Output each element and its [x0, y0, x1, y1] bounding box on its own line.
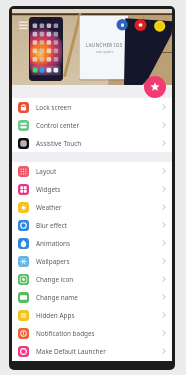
button[interactable]: Make Default Launcher: [12, 342, 172, 360]
staticText: Layout: [36, 167, 57, 176]
staticText: Make Default Launcher: [36, 347, 106, 356]
button[interactable]: Animations: [12, 234, 172, 252]
button[interactable]: Blur effect: [12, 216, 172, 234]
button[interactable]: Layout: [12, 162, 172, 180]
button[interactable]: Hidden Apps: [12, 306, 172, 324]
staticText: Blur effect: [36, 221, 68, 230]
button[interactable]: Change name: [12, 288, 172, 306]
button[interactable]: Widgets: [12, 180, 172, 198]
button[interactable]: Weather: [12, 198, 172, 216]
staticText: Animations: [36, 239, 71, 248]
staticText: Weather: [36, 203, 62, 212]
button[interactable]: Assistive Touch: [12, 134, 172, 152]
staticText: Notification badges: [36, 329, 95, 338]
staticText: Wallpapers: [36, 257, 70, 266]
staticText: Control center: [36, 121, 80, 130]
button[interactable]: Menu: [15, 19, 35, 39]
button[interactable]: Wallpapers: [12, 252, 172, 270]
staticText: Hidden Apps: [36, 311, 75, 320]
button[interactable]: Lock screen: [12, 98, 172, 116]
button[interactable]: Notification badges: [12, 324, 172, 342]
button[interactable]: Rate app: [144, 76, 166, 98]
staticText: LAUNCHER IOS: [86, 42, 123, 48]
button[interactable]: Control center: [12, 116, 172, 134]
staticText: Change icon: [36, 275, 74, 284]
staticText: new update: [96, 50, 114, 54]
button[interactable]: Change icon: [12, 270, 172, 288]
staticText: Lock screen: [36, 103, 72, 112]
staticText: Assistive Touch: [36, 139, 82, 148]
staticText: Widgets: [36, 185, 61, 194]
staticText: Change name: [36, 293, 78, 302]
